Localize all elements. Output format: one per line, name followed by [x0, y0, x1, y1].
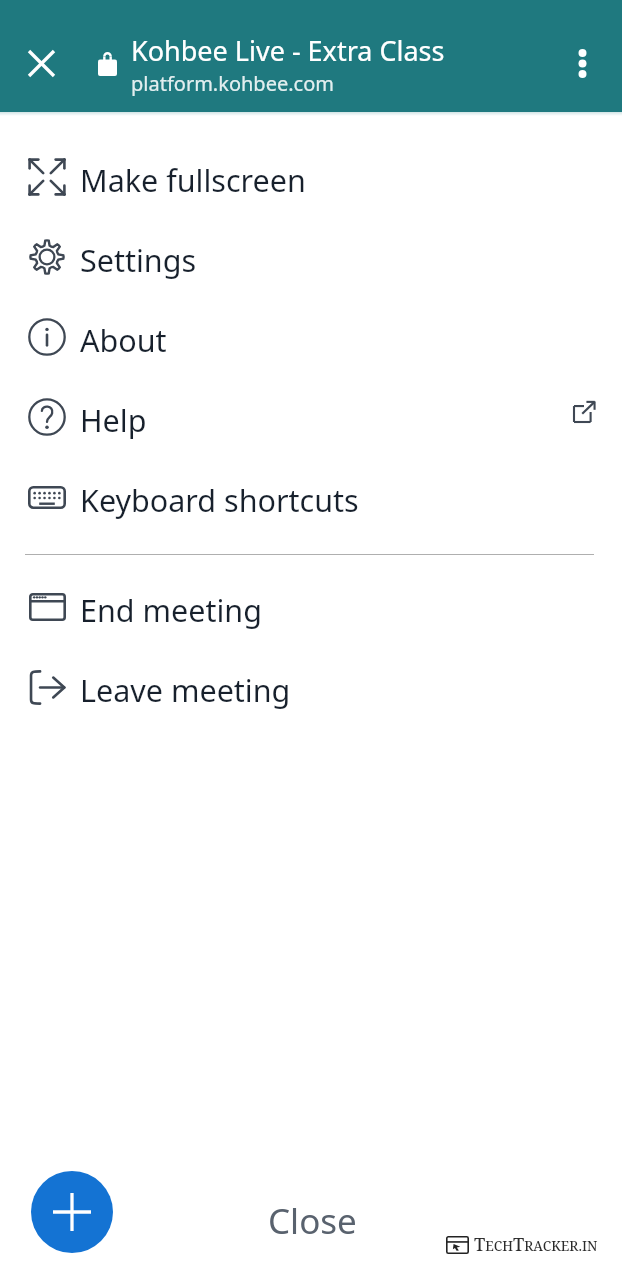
- staticText: Leave meeting: [80, 669, 291, 711]
- staticText: Settings: [80, 239, 197, 281]
- staticText: Make fullscreen: [80, 159, 306, 201]
- staticText: TECHTRACKER.IN: [474, 1232, 598, 1257]
- button[interactable]: Make fullscreen: [0, 140, 622, 220]
- staticText: Close: [268, 1197, 357, 1245]
- staticText: End meeting: [80, 589, 262, 631]
- button[interactable]: Close: [18, 40, 65, 87]
- button[interactable]: More options: [559, 40, 606, 87]
- button[interactable]: Help: [0, 380, 622, 460]
- staticText: About: [80, 319, 167, 361]
- button[interactable]: Settings: [0, 220, 622, 300]
- button[interactable]: Close: [268, 1197, 357, 1245]
- staticText: platform.kohbee.com: [131, 70, 334, 97]
- staticText: Help: [80, 399, 147, 441]
- button[interactable]: About: [0, 300, 622, 380]
- staticText: Kohbee Live - Extra Class: [131, 32, 445, 69]
- staticText: Keyboard shortcuts: [80, 479, 359, 521]
- button[interactable]: Keyboard shortcuts: [0, 460, 622, 540]
- button[interactable]: Leave meeting: [0, 650, 622, 730]
- button[interactable]: Add: [31, 1171, 113, 1253]
- button[interactable]: End meeting: [0, 570, 622, 650]
